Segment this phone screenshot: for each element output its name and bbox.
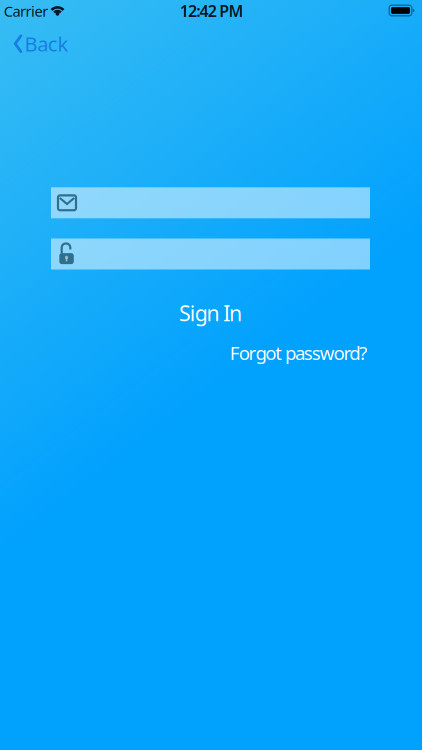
staticText: Back bbox=[24, 30, 68, 57]
staticText: Forgot password? bbox=[230, 340, 367, 365]
staticText: Sign In bbox=[179, 299, 242, 327]
button[interactable]: Forgot password? bbox=[226, 337, 371, 368]
staticText: Carrier bbox=[4, 1, 48, 21]
button[interactable] bbox=[51, 238, 370, 269]
button[interactable]: Sign In bbox=[173, 295, 248, 331]
staticText: 12:42 PM bbox=[180, 0, 243, 21]
button[interactable]: Back bbox=[10, 29, 71, 59]
button[interactable] bbox=[51, 187, 370, 218]
